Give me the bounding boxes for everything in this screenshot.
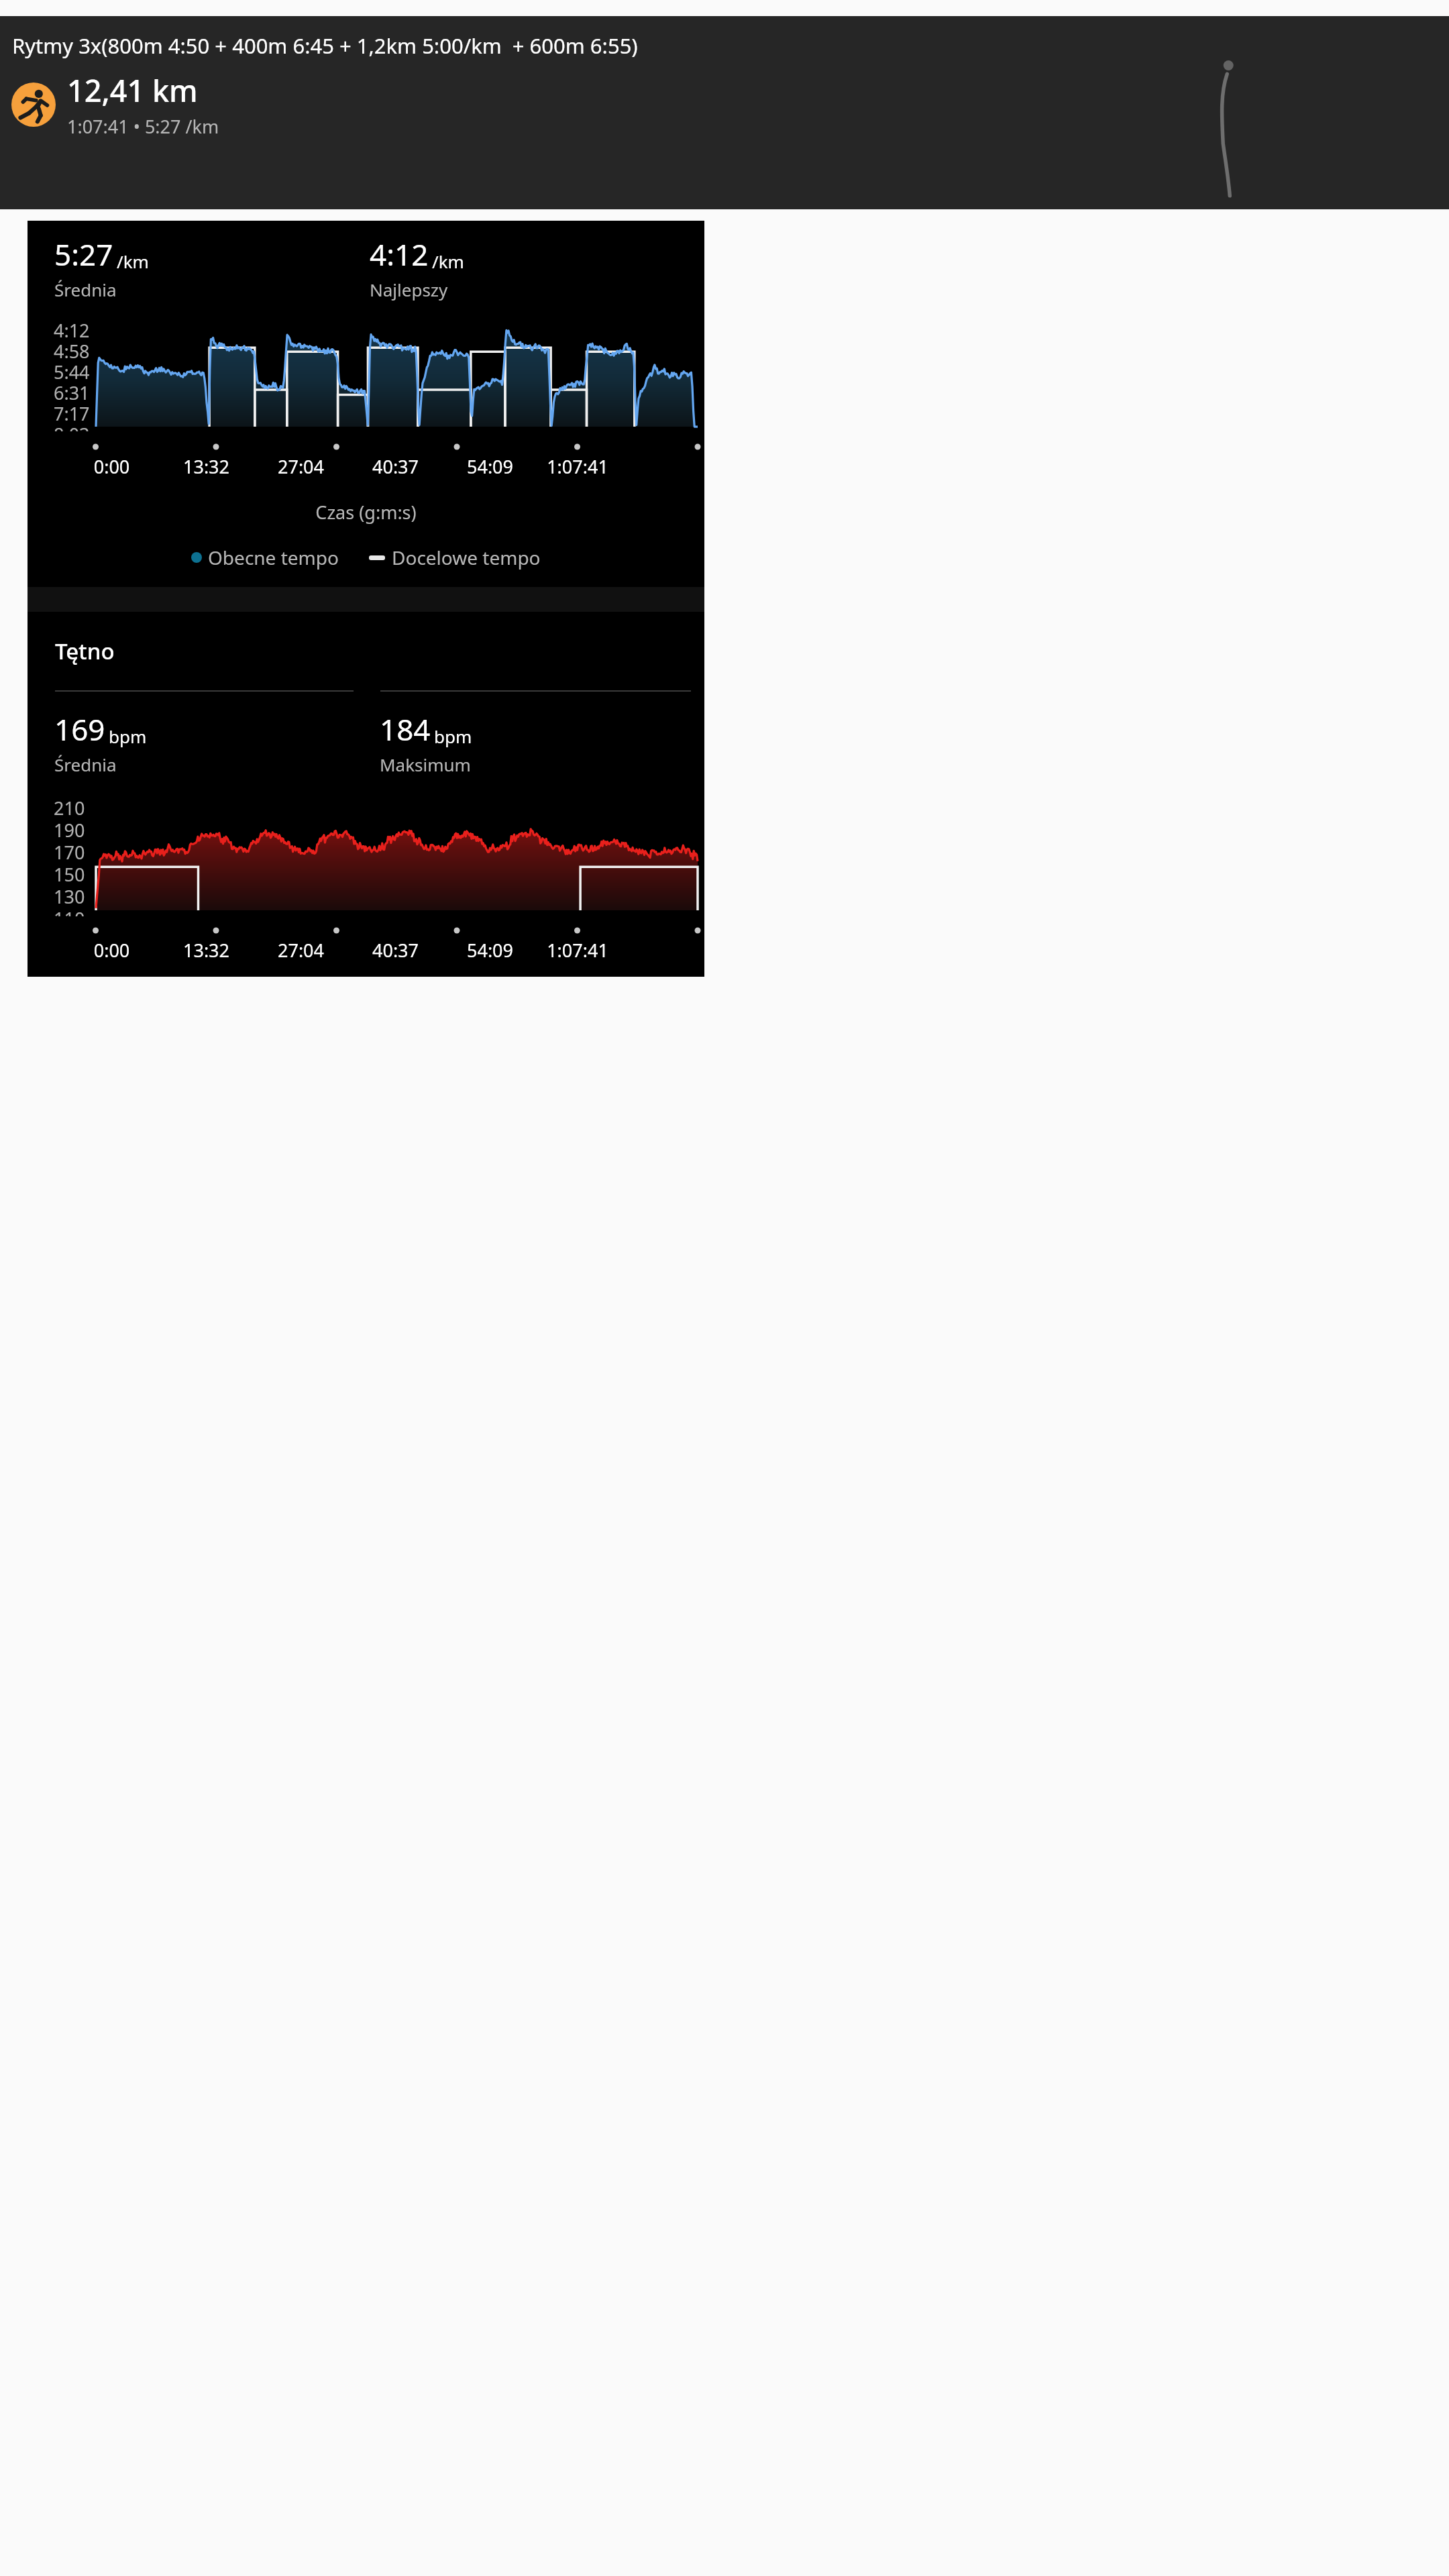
staticText: bpm [109,724,147,748]
staticText: 54:09 [443,938,537,963]
staticText: 5:27 [54,234,113,274]
staticText: /km [117,250,149,273]
staticText: 1:07:41 • 5:27 /km [67,114,219,139]
staticText: 4:58 [54,339,90,360]
staticText: Tętno [55,636,115,666]
staticText: 169 [54,709,105,749]
staticText: 170 [54,840,85,862]
staticText: 210 [54,796,85,818]
staticText: 54:09 [443,454,537,479]
staticText: 40:37 [348,938,443,963]
staticText: bpm [434,724,472,748]
staticText: Średnia [54,753,117,776]
staticText: 27:04 [254,938,348,963]
other: Bieganie [11,83,56,127]
staticText: 184 [380,709,431,749]
staticText: 110 [54,906,85,916]
staticText: 27:04 [254,454,348,479]
staticText: 12,41 km [67,70,198,111]
staticText: 1:07:41 [537,454,618,479]
button[interactable]: Docelowe tempo [369,545,541,570]
staticText: Rytmy 3x(800m 4:50 + 400m 6:45 + 1,2km 5… [12,32,638,60]
staticText: 13:32 [159,938,254,963]
staticText: Obecne tempo [208,545,339,570]
staticText: 150 [54,862,85,884]
staticText: 0:00 [64,454,159,479]
staticText: /km [432,250,464,273]
staticText: 6:31 [54,380,90,401]
staticText: 13:32 [159,454,254,479]
staticText: Średnia [54,278,117,301]
staticText: 40:37 [348,454,443,479]
staticText: Najlepszy [370,278,448,301]
staticText: Czas (g:m:s) [28,500,704,525]
staticText: 1:07:41 [537,938,618,963]
staticText: 8:03 [54,422,90,431]
staticText: 0:00 [64,938,159,963]
staticText: 4:12 [370,234,429,274]
staticText: 7:17 [54,401,90,422]
button[interactable]: Rytmy 3x(800m 4:50 + 400m 6:45 + 1,2km 5… [0,16,1449,209]
button[interactable]: Obecne tempo [191,545,339,570]
staticText: 5:44 [54,360,90,380]
staticText: Docelowe tempo [392,545,541,570]
staticText: 190 [54,818,85,840]
staticText: 4:12 [54,318,90,339]
staticText: 130 [54,884,85,906]
staticText: Maksimum [380,753,471,776]
